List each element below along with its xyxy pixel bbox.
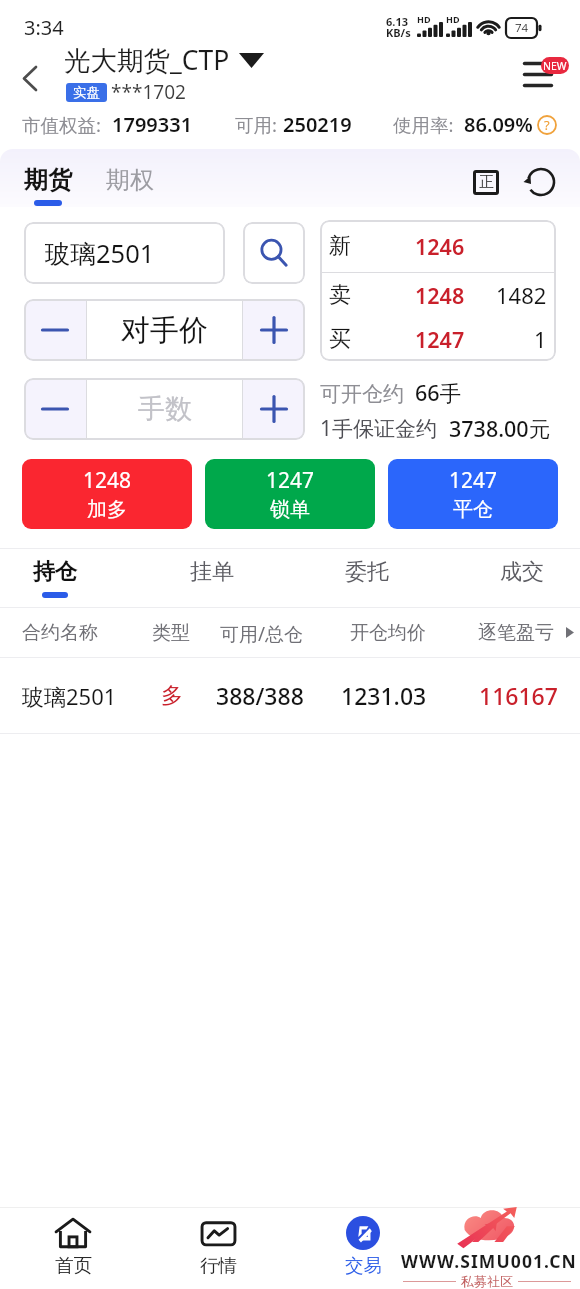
staticText: 锁单 bbox=[270, 497, 310, 522]
staticText: 74 bbox=[515, 20, 529, 36]
staticText: 挂单 bbox=[190, 558, 234, 586]
button[interactable]: Search bbox=[243, 222, 305, 284]
staticText: 388/388 bbox=[216, 680, 304, 711]
staticText: HD bbox=[417, 13, 431, 25]
staticText: 平仓 bbox=[453, 497, 493, 522]
staticText: 新 bbox=[329, 232, 351, 260]
button[interactable]: Decrease bbox=[24, 299, 86, 361]
button[interactable]: 持仓 bbox=[33, 558, 77, 598]
staticText: 1247 bbox=[415, 325, 465, 354]
staticText: 玻璃2501 bbox=[22, 681, 117, 711]
button[interactable]: 玻璃2501 bbox=[24, 222, 225, 284]
button[interactable]: Help bbox=[536, 114, 557, 135]
button[interactable]: 1247 bbox=[388, 459, 558, 529]
staticText: 1247 bbox=[449, 466, 498, 495]
staticText: 成交 bbox=[500, 558, 544, 586]
staticText: 类型 bbox=[152, 621, 190, 645]
staticText: 1 bbox=[534, 324, 547, 354]
staticText: ***1702 bbox=[111, 79, 186, 105]
button[interactable]: Decrease bbox=[24, 378, 86, 440]
staticText: 持仓 bbox=[33, 558, 77, 586]
staticText: 玻璃2501 bbox=[45, 236, 155, 271]
staticText: 逐笔盈亏 bbox=[478, 621, 554, 645]
button[interactable]: Increase bbox=[243, 378, 305, 440]
staticText: 1247 bbox=[266, 466, 315, 495]
button[interactable]: Order settings bbox=[468, 165, 504, 199]
staticText: 交易 bbox=[345, 1254, 382, 1277]
staticText: 86.09% bbox=[464, 111, 533, 138]
staticText: 开仓均价 bbox=[350, 621, 426, 645]
button[interactable]: 对手价 bbox=[87, 299, 242, 361]
button[interactable]: 玻璃2501 bbox=[0, 658, 580, 733]
staticText: 可用/总仓 bbox=[220, 621, 304, 647]
staticText: 3738.00元 bbox=[449, 414, 551, 443]
staticText: 1482 bbox=[496, 280, 547, 310]
staticText: 多 bbox=[161, 682, 183, 710]
button[interactable]: 行情 bbox=[168, 1214, 268, 1289]
button[interactable]: Menu bbox=[512, 50, 574, 98]
staticText: 1手保证金约 bbox=[320, 414, 438, 443]
staticText: 手数 bbox=[138, 392, 192, 426]
staticText: ? bbox=[544, 116, 550, 134]
staticText: 66手 bbox=[415, 378, 462, 407]
button[interactable]: Back bbox=[6, 54, 54, 102]
button[interactable]: 交易 bbox=[313, 1214, 413, 1289]
staticText: 可开仓约 bbox=[320, 381, 404, 407]
staticText: 光大期货_CTP bbox=[64, 42, 230, 78]
staticText: 6.13 KB/s bbox=[386, 14, 411, 40]
staticText: NEW bbox=[543, 59, 567, 73]
staticText: 加多 bbox=[87, 497, 127, 522]
staticText: 1231.03 bbox=[341, 680, 427, 711]
staticText: 250219 bbox=[283, 111, 352, 138]
staticText: 市值权益: bbox=[22, 112, 101, 137]
button[interactable]: 挂单 bbox=[190, 558, 234, 586]
staticText: 对手价 bbox=[121, 312, 208, 349]
staticText: 实盘 bbox=[73, 84, 100, 101]
button[interactable]: 1247 bbox=[205, 459, 375, 529]
staticText: 委托 bbox=[345, 558, 389, 586]
button[interactable]: 委托 bbox=[345, 558, 389, 586]
staticText: 期货 bbox=[24, 165, 72, 195]
staticText: HD bbox=[446, 13, 460, 25]
staticText: 卖 bbox=[329, 281, 351, 309]
staticText: 买 bbox=[329, 325, 351, 353]
staticText: 正 bbox=[479, 173, 494, 192]
button[interactable]: Increase bbox=[243, 299, 305, 361]
staticText: 使用率: bbox=[393, 112, 454, 137]
staticText: 3:34 bbox=[24, 14, 64, 41]
staticText: 1248 bbox=[415, 281, 465, 310]
button[interactable]: 期权 bbox=[106, 165, 154, 195]
staticText: WWW.SIMU001.CN bbox=[401, 1249, 577, 1273]
staticText: 合约名称 bbox=[22, 621, 98, 645]
staticText: 1246 bbox=[415, 232, 465, 261]
staticText: 行情 bbox=[200, 1254, 237, 1277]
button[interactable]: 首页 bbox=[23, 1214, 123, 1289]
staticText: 私募社区 bbox=[461, 1273, 513, 1289]
staticText: 可用: bbox=[235, 112, 277, 137]
staticText: 1248 bbox=[83, 466, 132, 495]
staticText: 1799331 bbox=[112, 111, 193, 138]
button[interactable]: 手数 bbox=[87, 378, 242, 440]
button[interactable]: 1248 bbox=[22, 459, 192, 529]
button[interactable]: 光大期货_CTP bbox=[64, 42, 264, 78]
button[interactable]: 成交 bbox=[500, 558, 544, 586]
button[interactable]: Refresh bbox=[522, 165, 560, 199]
staticText: 首页 bbox=[55, 1254, 92, 1277]
staticText: 116167 bbox=[479, 680, 558, 711]
staticText: 期权 bbox=[106, 165, 154, 195]
button[interactable]: 期货 bbox=[24, 165, 72, 206]
